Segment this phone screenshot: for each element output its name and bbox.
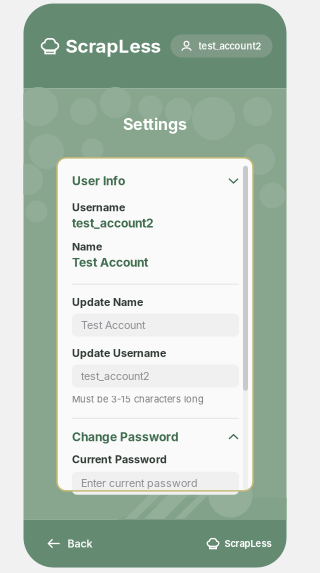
button[interactable]: test_account2: [170, 34, 272, 57]
staticText: Test Account: [81, 319, 145, 332]
staticText: Change Password: [72, 430, 179, 444]
staticText: Settings: [123, 114, 187, 134]
staticText: Current Password: [72, 453, 167, 466]
staticText: Update Username: [72, 347, 166, 359]
staticText: Username: [72, 201, 125, 214]
staticText: ScrapLess: [224, 538, 271, 549]
staticText: Must be 3-15 characters long: [72, 393, 204, 405]
button[interactable]: Change Password: [72, 429, 239, 445]
staticText: Enter current password: [81, 477, 198, 490]
staticText: test_account2: [198, 40, 261, 52]
staticText: Name: [72, 240, 102, 253]
staticText: ScrapLess: [65, 35, 160, 57]
staticText: Test Account: [72, 255, 148, 270]
staticText: User Info: [72, 174, 125, 188]
staticText: Update Name: [72, 296, 143, 309]
staticText: Back: [67, 537, 92, 550]
staticText: test_account2: [81, 370, 150, 382]
staticText: test_account2: [72, 216, 154, 230]
button[interactable]: User Info: [72, 173, 239, 189]
button[interactable]: Back: [47, 537, 92, 550]
